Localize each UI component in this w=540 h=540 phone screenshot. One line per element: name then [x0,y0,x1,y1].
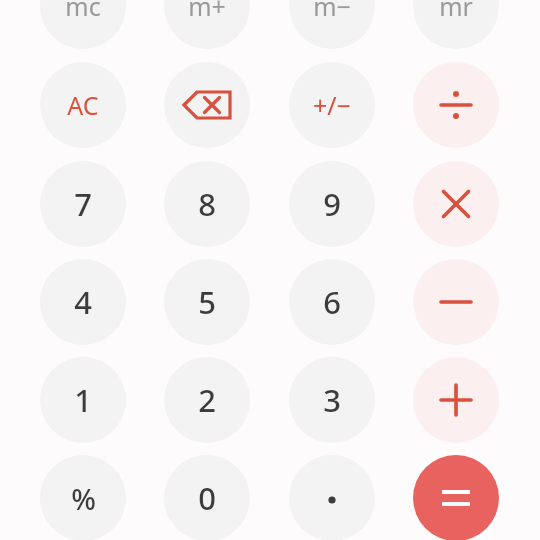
staticText: 7 [74,183,92,225]
staticText: 0 [198,477,216,519]
staticText: 5 [198,281,216,323]
staticText: 1 [74,379,92,421]
button[interactable]: Plus minus [289,62,375,148]
staticText: +/− [313,88,351,122]
button[interactable]: 2 [164,357,250,443]
button[interactable]: 6 [289,259,375,345]
staticText: 9 [323,183,341,225]
staticText: m− [313,0,351,23]
staticText: 3 [323,379,341,421]
button[interactable]: 7 [40,161,126,247]
staticText: AC [67,88,99,122]
button[interactable]: 0 [164,455,250,540]
button[interactable]: 3 [289,357,375,443]
button[interactable]: m+ [164,0,250,49]
button[interactable]: Multiply [413,161,499,247]
button[interactable]: 8 [164,161,250,247]
staticText: 6 [323,281,341,323]
button[interactable]: Plus [413,357,499,443]
button[interactable]: m− [289,0,375,49]
button[interactable]: 1 [40,357,126,443]
button[interactable]: mr [413,0,499,49]
staticText: mr [439,0,473,23]
staticText: 2 [198,379,216,421]
staticText: mc [65,0,101,23]
staticText: 4 [74,281,92,323]
button[interactable]: AC [40,62,126,148]
button[interactable]: Divide [413,62,499,148]
button[interactable]: 5 [164,259,250,345]
staticText: 8 [198,183,216,225]
staticText: % [71,479,96,518]
button[interactable]: mc [40,0,126,49]
button[interactable]: Backspace [164,62,250,148]
button[interactable]: Equals [413,455,499,540]
staticText: m+ [188,0,226,23]
button[interactable]: % [40,455,126,540]
button[interactable]: Minus [413,259,499,345]
button[interactable]: 4 [40,259,126,345]
button[interactable]: Decimal point [289,455,375,540]
button[interactable]: 9 [289,161,375,247]
